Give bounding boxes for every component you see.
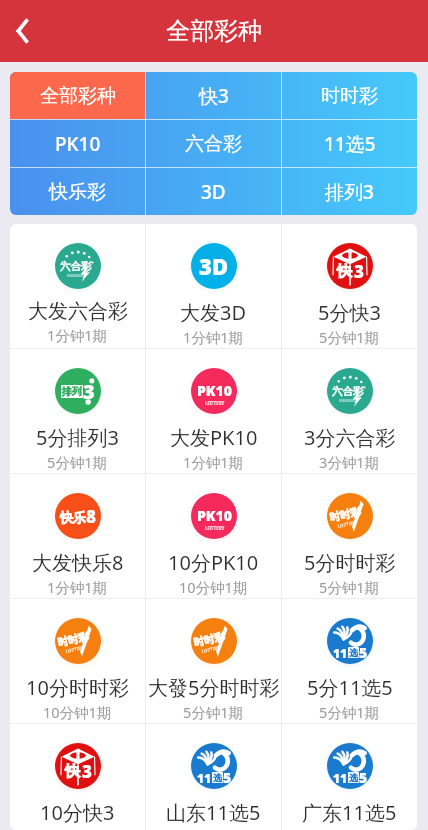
staticText: 选 — [349, 772, 358, 783]
staticText: 11 — [197, 770, 212, 786]
button[interactable]: 3D — [146, 224, 281, 348]
button[interactable]: 11 — [146, 724, 281, 830]
staticText: LOTTERY — [205, 525, 225, 531]
staticText: 5分11选5 — [307, 674, 393, 701]
button[interactable]: 快 — [282, 224, 417, 348]
staticText: 快3 — [199, 83, 229, 109]
staticText: 排列 — [62, 385, 82, 398]
button[interactable]: 六合彩 — [10, 224, 145, 348]
staticText: 大发3D — [180, 299, 247, 326]
staticText: 快 — [65, 762, 80, 781]
staticText: 10分PK10 — [168, 549, 259, 576]
staticText: 11 — [333, 770, 348, 786]
staticText: 10分快3 — [40, 799, 115, 826]
staticText: 5分钟1期 — [319, 577, 380, 597]
staticText: 10分钟1期 — [179, 577, 248, 597]
staticText: 六合彩 — [185, 132, 242, 156]
staticText: 大發5分时时彩 — [148, 674, 280, 701]
staticText: PK10 — [197, 506, 232, 525]
staticText: 1分钟1期 — [47, 577, 108, 597]
staticText: 11选5 — [324, 131, 376, 157]
staticText: LOTTERY — [65, 644, 86, 654]
staticText: 快乐彩 — [49, 180, 106, 204]
staticText: 全部彩种 — [40, 84, 116, 108]
staticText: 5分钟1期 — [183, 702, 244, 722]
staticText: 1分钟1期 — [183, 452, 244, 472]
button[interactable]: 快乐彩 — [10, 168, 145, 215]
staticText: 排列3 — [325, 179, 374, 205]
staticText: 时时彩 — [321, 84, 378, 108]
button[interactable]: 11 — [282, 724, 417, 830]
staticText: 5分快3 — [318, 299, 381, 326]
button[interactable]: 时时彩 — [282, 474, 417, 598]
button[interactable]: Back — [0, 8, 46, 54]
staticText: 5分排列3 — [36, 424, 119, 451]
staticText: 时时彩 — [328, 505, 362, 524]
button[interactable]: 排列 — [10, 349, 145, 473]
button[interactable]: 快3 — [146, 72, 281, 119]
button[interactable]: PK10 — [10, 120, 145, 167]
staticText: 时时彩 — [192, 630, 226, 649]
staticText: MARKSIX — [67, 273, 86, 278]
staticText: 10分时时彩 — [26, 674, 129, 701]
staticText: 5分钟1期 — [47, 452, 108, 472]
staticText: 5 — [359, 643, 368, 662]
button[interactable]: 六合彩 — [146, 120, 281, 167]
staticText: 3分钟1期 — [319, 452, 380, 472]
staticText: PK10 — [55, 131, 101, 157]
button[interactable]: 11 — [282, 599, 417, 723]
staticText: 3D — [199, 251, 229, 281]
staticText: 大发快乐8 — [32, 549, 124, 576]
button[interactable]: 时时彩 — [10, 599, 145, 723]
staticText: 5分钟1期 — [319, 702, 380, 722]
staticText: 5 — [359, 768, 368, 787]
button[interactable]: 快 — [10, 724, 145, 830]
staticText: 10分钟1期 — [43, 702, 112, 722]
staticText: 8 — [86, 505, 96, 528]
staticText: 选 — [213, 772, 222, 783]
staticText: MARKSIX — [339, 398, 358, 403]
button[interactable]: PK10 — [146, 474, 281, 598]
staticText: 3分六合彩 — [304, 424, 396, 451]
staticText: 3 — [82, 760, 92, 783]
staticText: 3D — [201, 179, 226, 205]
staticText: 大发六合彩 — [28, 299, 128, 324]
staticText: 快乐 — [60, 509, 86, 525]
staticText: 5分钟1期 — [319, 327, 380, 347]
button[interactable]: 排列3 — [282, 168, 417, 215]
button[interactable]: 全部彩种 — [10, 72, 145, 119]
staticText: 六合彩 — [60, 260, 92, 273]
button[interactable]: 六合彩 — [282, 349, 417, 473]
staticText: PK10 — [197, 381, 232, 400]
staticText: LOTTERY — [201, 644, 222, 654]
staticText: 3 — [83, 378, 95, 405]
staticText: 11 — [333, 645, 348, 661]
staticText: 5 — [223, 768, 232, 787]
staticText: 时时彩 — [56, 630, 90, 649]
staticText: 3 — [354, 260, 364, 283]
staticText: 选 — [349, 647, 358, 658]
staticText: 大发PK10 — [170, 424, 258, 451]
staticText: 全部彩种 — [166, 16, 262, 46]
staticText: 5分时时彩 — [304, 549, 396, 576]
staticText: LOTTERY — [205, 400, 225, 406]
staticText: 六合彩 — [332, 385, 364, 398]
button[interactable]: 时时彩 — [146, 599, 281, 723]
staticText: 快 — [337, 262, 352, 281]
button[interactable]: 时时彩 — [282, 72, 417, 119]
button[interactable]: 3D — [146, 168, 281, 215]
button[interactable]: 快乐 — [10, 474, 145, 598]
staticText: LOTTERY — [337, 519, 358, 529]
button[interactable]: 11选5 — [282, 120, 417, 167]
button[interactable]: PK10 — [146, 349, 281, 473]
staticText: 1分钟1期 — [183, 327, 244, 347]
staticText: 广东11选5 — [302, 799, 397, 826]
staticText: 1分钟1期 — [47, 325, 108, 345]
staticText: 山东11选5 — [166, 799, 261, 826]
